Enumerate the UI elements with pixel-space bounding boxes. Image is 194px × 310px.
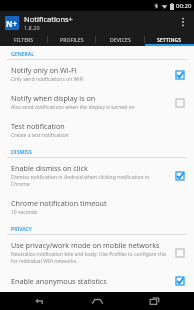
button[interactable]: More options — [172, 11, 194, 33]
button[interactable]: Chrome notification timeout — [0, 193, 194, 221]
staticText: Only send notifications on WiFi — [11, 76, 84, 83]
staticText: Notify when display is on — [11, 93, 96, 103]
button[interactable]: Test notification — [0, 116, 194, 144]
staticText: Create a test notification — [11, 132, 69, 139]
staticText: Dismiss notification in Android when cli… — [11, 174, 169, 188]
button[interactable]: Checked — [173, 275, 186, 287]
staticText: Notify only on Wi-Fi — [11, 65, 77, 75]
button[interactable]: Unchecked — [173, 246, 186, 259]
staticText: SETTINGS — [157, 36, 182, 43]
staticText: Enable dismiss on click — [11, 163, 88, 173]
staticText: 1.8.20 — [24, 24, 40, 31]
staticText: DISMISS — [11, 148, 32, 155]
staticText: N+ — [6, 18, 18, 29]
staticText: DEVICES — [110, 36, 131, 43]
staticText: Also send notifications when the display… — [11, 104, 135, 111]
staticText: Neutralize notification title and body. … — [11, 251, 169, 265]
staticText: 00:20 — [176, 2, 192, 10]
button[interactable]: Notify only on Wi-Fi — [0, 60, 194, 88]
staticText: PROFILES — [60, 36, 84, 43]
button[interactable]: FILTERS — [0, 33, 48, 46]
button[interactable]: SETTINGS — [145, 33, 194, 46]
staticText: Chrome notification timeout — [11, 198, 107, 208]
button[interactable]: Home — [80, 292, 114, 310]
button[interactable]: PROFILES — [48, 33, 96, 46]
staticText: PRIVACY — [11, 225, 32, 232]
button[interactable]: Checked — [173, 169, 186, 182]
staticText: GENERAL — [11, 50, 35, 57]
staticText: Enable anonymous statistics — [11, 276, 107, 286]
staticText: Use privacy/work mode on mobile networks — [11, 240, 160, 250]
staticText: FILTERS — [14, 36, 34, 43]
button[interactable]: Enable anonymous statistics — [0, 270, 194, 292]
button[interactable]: Recent apps — [137, 292, 171, 310]
staticText: Test notification — [11, 121, 65, 131]
button[interactable]: Use privacy/work mode on mobile networks — [0, 235, 194, 270]
button[interactable]: Back — [23, 292, 57, 310]
button[interactable]: Checked — [173, 68, 186, 81]
button[interactable]: Enable dismiss on click — [0, 158, 194, 193]
button[interactable]: DEVICES — [96, 33, 145, 46]
button[interactable]: Notify when display is on — [0, 88, 194, 116]
staticText: Notifications+ — [24, 14, 73, 24]
staticText: 10 seconds — [11, 209, 38, 216]
button[interactable]: Unchecked — [173, 96, 186, 109]
